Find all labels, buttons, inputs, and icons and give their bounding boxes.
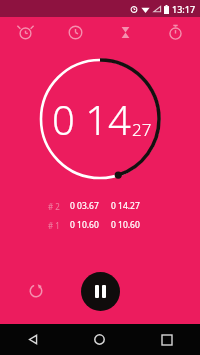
button[interactable]: # 2: [48, 200, 152, 212]
button[interactable]: Alarm: [0, 17, 50, 47]
staticText: 0 10.60: [70, 219, 111, 231]
button[interactable]: # 1: [48, 219, 152, 231]
button[interactable]: Home: [66, 324, 133, 355]
staticText: 13:17: [172, 3, 196, 15]
staticText: 0 03.67: [70, 200, 111, 212]
staticText: 0 14: [52, 92, 131, 146]
staticText: 0 10.60: [111, 219, 140, 231]
staticText: # 2: [48, 201, 70, 212]
button[interactable]: Recents: [133, 324, 200, 355]
button[interactable]: Timer: [100, 17, 150, 47]
staticText: 27: [132, 118, 152, 141]
staticText: 0 14.27: [111, 200, 140, 212]
button[interactable]: Stopwatch: [150, 17, 200, 47]
button[interactable]: Pause: [81, 272, 120, 311]
button[interactable]: Clock: [50, 17, 100, 47]
button[interactable]: Reset: [21, 276, 51, 306]
button[interactable]: Back: [0, 324, 66, 355]
staticText: # 1: [48, 220, 70, 231]
